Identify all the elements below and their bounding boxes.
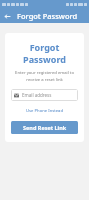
staticText: Send Reset Link [23, 124, 67, 131]
button[interactable]: Send Reset Link [11, 121, 78, 134]
staticText: Enter your registered email to receive a… [11, 70, 78, 82]
staticText: Forgot Password [17, 11, 78, 21]
button[interactable]: Email address [11, 89, 78, 101]
button[interactable]: Back [0, 9, 14, 23]
button[interactable]: Use Phone Instead [24, 107, 66, 115]
staticText: Forgot Password [11, 41, 78, 65]
staticText: Email address [22, 92, 52, 98]
staticText: Use Phone Instead [26, 108, 64, 114]
